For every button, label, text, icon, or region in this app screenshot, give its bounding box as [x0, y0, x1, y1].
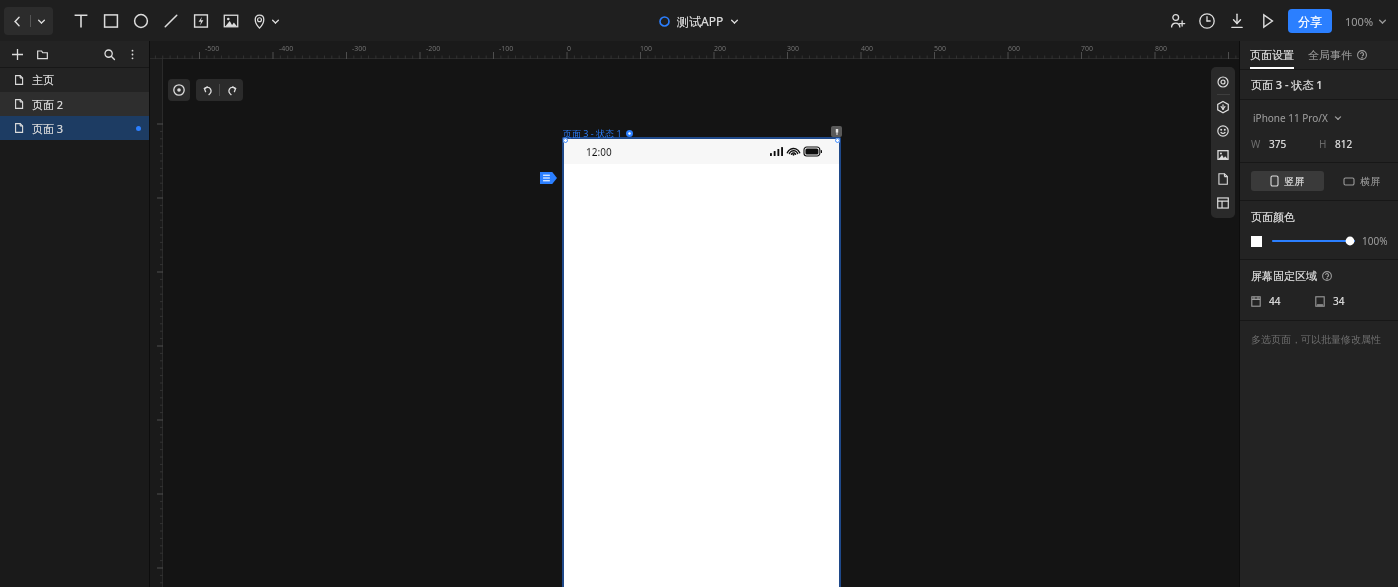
button[interactable]: Marker [246, 6, 286, 36]
staticText: -200 [426, 44, 441, 54]
staticText: 600 [1008, 44, 1021, 54]
button[interactable]: Invite [1162, 6, 1192, 36]
button[interactable]: Back [4, 7, 53, 35]
staticText: 34 [1333, 294, 1345, 308]
button[interactable]: Fit to screen [168, 79, 190, 101]
button[interactable]: Redo [220, 79, 243, 101]
button[interactable]: More options [123, 45, 141, 63]
button[interactable]: 页面 3 [0, 116, 149, 140]
button[interactable]: 页面设置 [1240, 48, 1294, 69]
button[interactable]: Text [66, 6, 96, 36]
button[interactable]: 100% [1342, 11, 1390, 32]
button[interactable]: Layouts [1211, 191, 1235, 215]
staticText: 375 [1269, 137, 1287, 151]
staticText: 400 [861, 44, 874, 54]
staticText: -300 [352, 44, 367, 54]
staticText: -100 [499, 44, 514, 54]
button[interactable]: 全局事件 [1308, 48, 1367, 69]
staticText: 页面颜色 [1251, 210, 1295, 224]
staticText: 页面设置 [1250, 48, 1294, 62]
button[interactable]: Search [100, 45, 118, 63]
button[interactable]: 主页 [0, 68, 149, 92]
staticText: 812 [1335, 137, 1353, 151]
staticText: 竖屏 [1284, 175, 1304, 188]
staticText: 700 [1081, 44, 1094, 54]
button[interactable]: 横屏 [1340, 171, 1384, 191]
staticText: 500 [934, 44, 947, 54]
button[interactable]: Download [1222, 6, 1252, 36]
button[interactable]: 测试APP [651, 9, 747, 33]
staticText: 主页 [32, 73, 54, 87]
button[interactable]: Widgets [1211, 95, 1235, 119]
button[interactable]: Pin artboard [831, 126, 842, 137]
button[interactable]: New folder [33, 45, 51, 63]
staticText: 200 [714, 44, 727, 54]
staticText: H [1319, 137, 1327, 151]
button[interactable]: Images [1211, 143, 1235, 167]
staticText: 0 [567, 44, 572, 54]
staticText: 测试APP [677, 13, 724, 29]
staticText: 屏幕固定区域 [1251, 269, 1317, 283]
staticText: 多选页面，可以批量修改属性 [1251, 333, 1381, 346]
staticText: -400 [279, 44, 294, 54]
button[interactable]: Preview [1252, 6, 1282, 36]
staticText: 全局事件 [1308, 48, 1352, 62]
staticText: W [1251, 137, 1261, 151]
staticText: 800 [1155, 44, 1168, 54]
button[interactable]: Ellipse [126, 6, 156, 36]
button[interactable]: 页面 2 [0, 92, 149, 116]
staticText: 分享 [1298, 14, 1322, 29]
button[interactable]: 竖屏 [1251, 171, 1324, 191]
staticText: 12:00 [586, 145, 612, 159]
staticText: iPhone 11 Pro/X [1253, 111, 1328, 125]
staticText: 100% [1345, 14, 1374, 29]
button[interactable]: 分享 [1288, 9, 1332, 33]
staticText: -500 [205, 44, 220, 54]
button[interactable]: Rectangle [96, 6, 126, 36]
button[interactable]: History [1192, 6, 1222, 36]
button[interactable]: Line [156, 6, 186, 36]
button[interactable]: Image [216, 6, 246, 36]
button[interactable]: Components [1211, 70, 1235, 94]
staticText: 页面 2 [32, 97, 64, 112]
button[interactable]: Add page [8, 45, 26, 63]
staticText: 页面 3 - 状态 1 [563, 127, 622, 139]
staticText: 100% [1362, 234, 1388, 248]
button[interactable]: Files [1211, 167, 1235, 191]
staticText: 横屏 [1360, 175, 1380, 188]
button[interactable]: Component [186, 6, 216, 36]
staticText: 44 [1269, 294, 1281, 308]
button[interactable]: iPhone 11 Pro/X [1251, 109, 1344, 127]
staticText: 300 [787, 44, 800, 54]
staticText: 100 [640, 44, 653, 54]
staticText: 页面 3 [32, 121, 64, 136]
button[interactable]: Icons [1211, 119, 1235, 143]
button[interactable] [1273, 235, 1354, 247]
staticText: 页面 3 - 状态 1 [1251, 77, 1323, 92]
button[interactable]: Undo [196, 79, 219, 101]
